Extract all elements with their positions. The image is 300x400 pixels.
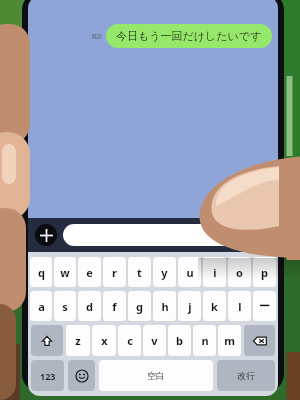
button[interactable]: f [103, 291, 126, 321]
staticText: s [62, 299, 68, 314]
staticText: c [127, 333, 133, 348]
staticText: z [75, 333, 81, 348]
staticText: 改行 [237, 370, 255, 381]
button[interactable]: Emoji keyboard [68, 360, 95, 391]
button[interactable]: b [168, 325, 191, 356]
staticText: h [161, 299, 169, 314]
staticText: v [151, 333, 158, 348]
button[interactable]: q [30, 257, 52, 287]
staticText: w [60, 265, 70, 280]
button[interactable]: m [218, 325, 241, 356]
staticText: 既読 [92, 33, 102, 39]
staticText: k [211, 299, 218, 314]
button[interactable]: j [178, 291, 201, 321]
button[interactable]: Voice message [251, 225, 271, 245]
staticText: ー [259, 299, 270, 313]
staticText: q [38, 265, 45, 280]
staticText: r [112, 265, 117, 280]
button[interactable]: s [54, 291, 76, 321]
button[interactable]: 123 [31, 360, 64, 391]
staticText: 空白 [147, 370, 165, 381]
button[interactable]: t [128, 257, 151, 287]
button[interactable]: x [92, 325, 116, 356]
button[interactable]: Shift [31, 325, 63, 356]
button[interactable]: y [153, 257, 176, 287]
button[interactable]: ー [253, 291, 276, 321]
button[interactable]: u [178, 257, 201, 287]
staticText: 今日もう一回だけしたいです [116, 29, 262, 43]
staticText: o [236, 265, 243, 280]
staticText: l [238, 299, 242, 314]
staticText: i [213, 265, 217, 280]
staticText: 123 [40, 370, 56, 382]
staticText: f [112, 299, 117, 314]
button[interactable]: r [103, 257, 126, 287]
staticText: d [86, 299, 93, 314]
button[interactable]: w [54, 257, 76, 287]
button[interactable]: c [118, 325, 141, 356]
button[interactable]: Backspace [244, 325, 275, 356]
button[interactable]: h [153, 291, 176, 321]
staticText: m [224, 333, 235, 348]
button[interactable]: v [143, 325, 166, 356]
button[interactable]: Emoji [228, 228, 242, 242]
button[interactable]: 今日もう一回だけしたいです [106, 24, 272, 48]
staticText: a [38, 299, 45, 314]
button[interactable]: g [128, 291, 151, 321]
button[interactable]: a [30, 291, 52, 321]
button[interactable]: o [228, 257, 251, 287]
button[interactable]: Add attachment [35, 224, 57, 246]
button[interactable]: Emoji [63, 224, 246, 246]
staticText: t [137, 265, 142, 280]
button[interactable]: z [66, 325, 90, 356]
button[interactable]: d [78, 291, 101, 321]
staticText: j [188, 299, 192, 314]
staticText: p [261, 265, 268, 280]
button[interactable]: 空白 [99, 360, 213, 391]
button[interactable]: i [203, 257, 226, 287]
staticText: u [186, 265, 194, 280]
staticText: n [201, 333, 209, 348]
staticText: b [176, 333, 183, 348]
staticText: e [86, 265, 93, 280]
staticText: g [136, 299, 143, 314]
button[interactable]: l [228, 291, 251, 321]
staticText: x [101, 333, 108, 348]
staticText: y [161, 265, 168, 280]
button[interactable]: k [203, 291, 226, 321]
button[interactable]: n [193, 325, 216, 356]
button[interactable]: 改行 [217, 360, 275, 391]
button[interactable]: e [78, 257, 101, 287]
button[interactable]: p [253, 257, 276, 287]
